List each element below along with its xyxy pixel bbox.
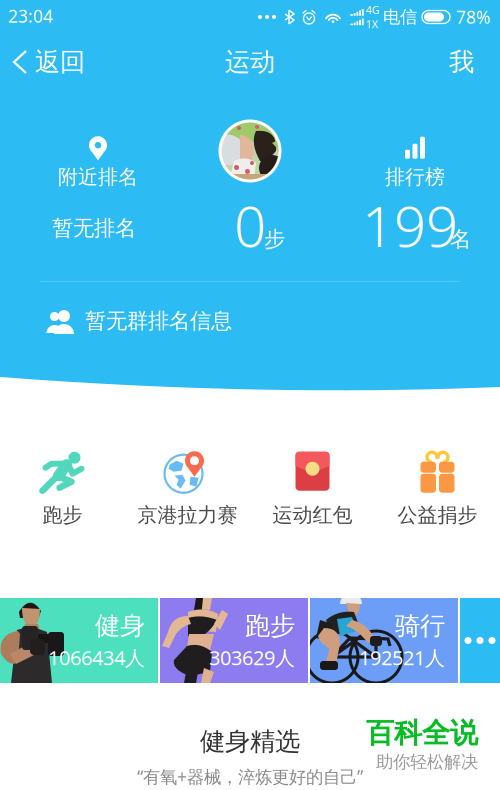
button[interactable]: More categories: [460, 598, 500, 683]
staticText: 运动红包: [272, 503, 352, 527]
staticText: 暂无排名: [52, 215, 136, 241]
staticText: 199: [362, 188, 458, 262]
staticText: 1066434人: [48, 644, 145, 671]
staticText: 23:04: [8, 4, 53, 27]
button[interactable]: 排行榜: [340, 132, 490, 194]
staticText: “有氧+器械，淬炼更好的自己”: [137, 765, 363, 788]
staticText: 健身: [95, 610, 145, 641]
staticText: 电信: [383, 6, 417, 28]
button[interactable]: 返回: [0, 36, 120, 88]
staticText: 排行榜: [385, 165, 445, 189]
staticText: 返回: [35, 46, 85, 77]
staticText: 303629人: [209, 644, 295, 671]
staticText: 附近排名: [58, 165, 138, 189]
staticText: 骑行: [395, 610, 445, 641]
button[interactable]: 运动红包: [250, 444, 375, 534]
staticText: 78%: [456, 5, 490, 28]
button[interactable]: 暂无群排名信息: [0, 296, 500, 346]
button[interactable]: 跑步: [160, 598, 308, 683]
button[interactable]: 附近排名: [23, 132, 173, 194]
staticText: 公益捐步: [397, 503, 477, 527]
button[interactable]: 京港拉力赛: [125, 444, 250, 534]
button[interactable]: 公益捐步: [375, 444, 500, 534]
staticText: 助你轻松解决: [376, 751, 478, 773]
button[interactable]: 骑行: [310, 598, 458, 683]
button[interactable]: 跑步: [0, 444, 125, 534]
staticText: 百科全说: [366, 716, 478, 750]
staticText: 跑步: [42, 503, 82, 527]
staticText: 0: [234, 188, 266, 262]
staticText: 我: [449, 46, 474, 77]
staticText: 健身精选: [200, 726, 300, 757]
staticText: 4G: [366, 3, 380, 17]
button[interactable]: 健身: [0, 598, 158, 683]
staticText: 步: [264, 226, 285, 252]
button[interactable]: Profile photo: [220, 121, 280, 181]
staticText: 运动: [225, 46, 275, 77]
staticText: 名: [450, 226, 471, 252]
button[interactable]: 我: [400, 36, 500, 88]
staticText: 1X: [366, 17, 378, 31]
staticText: 暂无群排名信息: [85, 308, 232, 334]
staticText: 192521人: [359, 644, 445, 671]
staticText: 京港拉力赛: [137, 503, 237, 527]
staticText: 跑步: [245, 610, 295, 641]
